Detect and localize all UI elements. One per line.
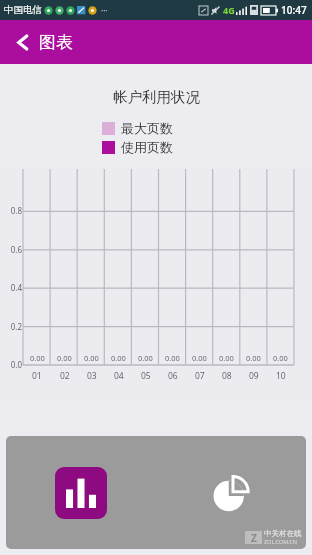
button[interactable]: 最大页数 [102,120,210,136]
staticText: 10 [276,370,286,382]
staticText: 使用页数 [121,139,173,155]
button[interactable]: 使用页数 [102,139,210,155]
button[interactable]: Pie chart [205,467,257,519]
staticText: 图表 [39,32,73,53]
button[interactable]: Bar chart [55,467,107,519]
staticText: 0.00 [192,353,207,363]
staticText: Z [251,531,257,544]
staticText: 0.4 [10,282,22,293]
staticText: 0.00 [57,353,72,363]
staticText: 中国电信 [4,4,42,16]
staticText: 0.00 [84,353,99,363]
staticText: 01 [32,370,42,382]
staticText: ··· [101,5,108,16]
staticText: 08 [222,370,232,382]
staticText: 0.00 [30,353,45,363]
staticText: 中关村在线 [264,529,302,538]
staticText: 0.00 [219,353,234,363]
staticText: 0.0 [10,359,22,370]
staticText: 0.6 [10,244,22,255]
button[interactable]: Back [10,29,36,55]
staticText: 09 [249,370,259,382]
staticText: ZOL.COM.CN [264,538,297,545]
staticText: 03 [87,370,97,382]
staticText: 06 [168,370,178,382]
staticText: 0.00 [165,353,180,363]
staticText: 0.00 [246,353,261,363]
staticText: 05 [141,370,151,382]
staticText: 0.00 [273,353,288,363]
staticText: 0.2 [10,321,22,332]
staticText: 0.00 [111,353,126,363]
staticText: 10:47 [281,3,307,17]
staticText: 0.00 [138,353,153,363]
staticText: 02 [60,370,70,382]
staticText: 最大页数 [121,120,173,136]
staticText: 0.8 [10,205,22,216]
button[interactable]: Back [0,20,312,64]
staticText: 帐户利用状况 [113,88,200,106]
staticText: 4G [223,4,235,16]
staticText: 04 [114,370,124,382]
staticText: 07 [195,370,205,382]
